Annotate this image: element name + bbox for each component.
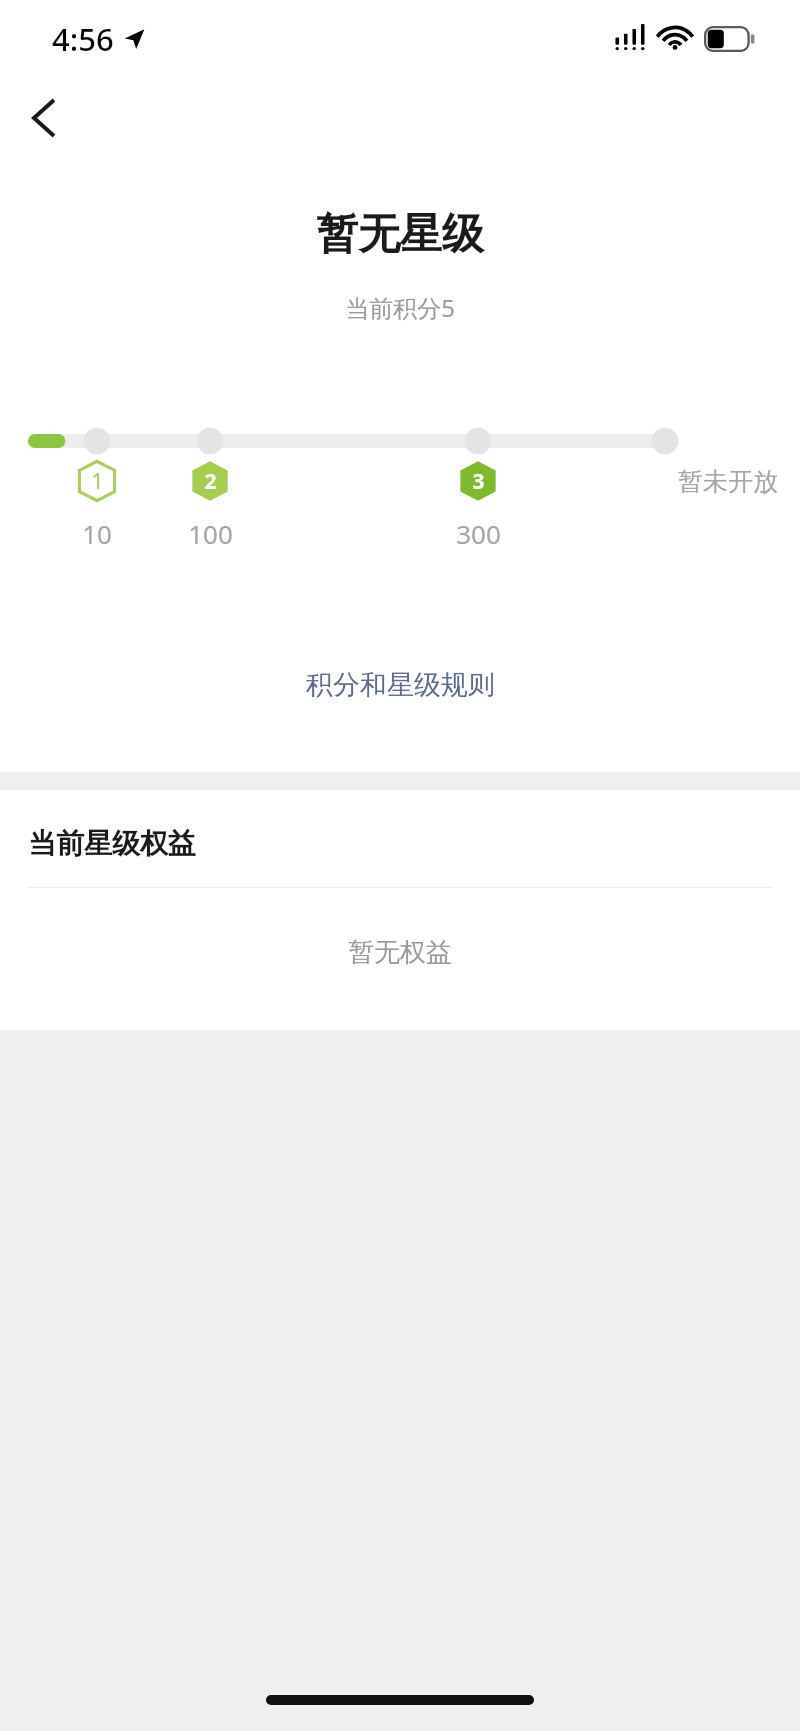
- staticText: 暂无权益: [348, 936, 452, 969]
- staticText: 暂无星级: [316, 208, 484, 261]
- staticText: 10: [82, 516, 112, 551]
- staticText: 当前积分5: [345, 291, 455, 324]
- staticText: 4:56: [52, 18, 114, 60]
- staticText: 3: [472, 467, 485, 496]
- staticText: 当前星级权益: [28, 826, 196, 861]
- staticText: 1: [91, 467, 104, 496]
- staticText: 暂未开放: [678, 466, 778, 497]
- button[interactable]: Back: [14, 88, 74, 148]
- staticText: 2: [204, 467, 217, 496]
- staticText: 积分和星级规则: [306, 668, 495, 702]
- button[interactable]: 积分和星级规则: [290, 660, 511, 710]
- staticText: 300: [456, 516, 501, 551]
- staticText: 100: [188, 516, 233, 551]
